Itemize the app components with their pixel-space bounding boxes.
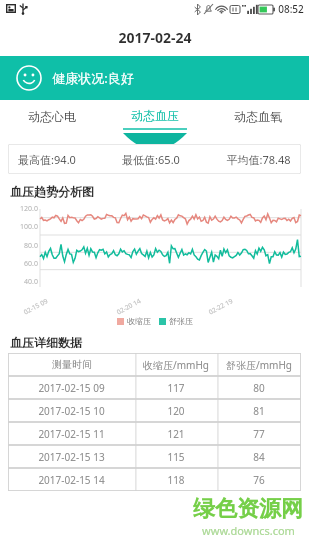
- staticText: 02-22 19: [206, 296, 235, 317]
- staticText: 118: [167, 473, 185, 487]
- staticText: 40.0: [24, 277, 38, 287]
- staticText: 2017-02-15 11: [38, 427, 105, 441]
- staticText: 60.0: [24, 259, 38, 269]
- staticText: 02-15 09: [21, 296, 50, 317]
- staticText: 80: [253, 381, 265, 395]
- staticText: 2017-02-15 09: [38, 381, 105, 395]
- staticText: 2017-02-15 14: [38, 473, 105, 487]
- staticText: 2017-02-15 10: [38, 404, 105, 418]
- staticText: 测量时间: [52, 358, 92, 371]
- staticText: 84: [253, 450, 265, 464]
- staticText: 121: [167, 427, 185, 441]
- staticText: 最高值:94.0: [18, 152, 76, 167]
- staticText: 120: [167, 404, 185, 418]
- button[interactable]: 动态血氧: [206, 100, 309, 138]
- staticText: 76: [253, 473, 265, 487]
- staticText: www.downcs.com: [202, 523, 295, 538]
- staticText: 收缩压/mmHg: [143, 358, 209, 372]
- button[interactable]: 最高值:94.0: [8, 144, 301, 174]
- staticText: 115: [167, 450, 185, 464]
- staticText: 80.0: [24, 241, 38, 251]
- staticText: 动态心电: [28, 109, 76, 124]
- button[interactable]: 2017-02-15 09: [8, 376, 301, 399]
- staticText: 动态血氧: [234, 109, 282, 124]
- staticText: 舒张压/mmHg: [226, 358, 292, 372]
- button[interactable]: 2017-02-15 13: [8, 445, 301, 468]
- staticText: 平均值:78.48: [226, 152, 291, 167]
- staticText: 收缩压: [127, 316, 151, 326]
- staticText: 血压详细数据: [10, 335, 82, 350]
- staticText: 2017-02-15 13: [38, 450, 105, 464]
- staticText: 117: [167, 381, 185, 395]
- staticText: 81: [253, 404, 265, 418]
- staticText: 最低值:65.0: [122, 152, 180, 167]
- staticText: 100.0: [20, 222, 38, 232]
- button[interactable]: 健康状况:良好: [0, 56, 309, 100]
- staticText: 02-20 14: [114, 296, 143, 317]
- staticText: 舒张压: [169, 316, 193, 326]
- button[interactable]: 2017-02-15 10: [8, 399, 301, 422]
- staticText: 120.0: [20, 204, 38, 214]
- staticText: 血压趋势分析图: [10, 184, 94, 199]
- staticText: 绿色资源网: [193, 495, 303, 523]
- staticText: 健康状况:良好: [52, 69, 134, 87]
- staticText: 动态血压: [131, 108, 179, 123]
- staticText: 77: [253, 427, 265, 441]
- staticText: 2017-02-24: [118, 28, 192, 47]
- button[interactable]: 动态血压: [103, 100, 206, 138]
- button[interactable]: 2017-02-15 11: [8, 422, 301, 445]
- button[interactable]: 动态心电: [0, 100, 103, 138]
- staticText: 08:52: [278, 2, 304, 16]
- button[interactable]: 测量时间: [8, 353, 301, 376]
- button[interactable]: 2017-02-15 14: [8, 468, 301, 491]
